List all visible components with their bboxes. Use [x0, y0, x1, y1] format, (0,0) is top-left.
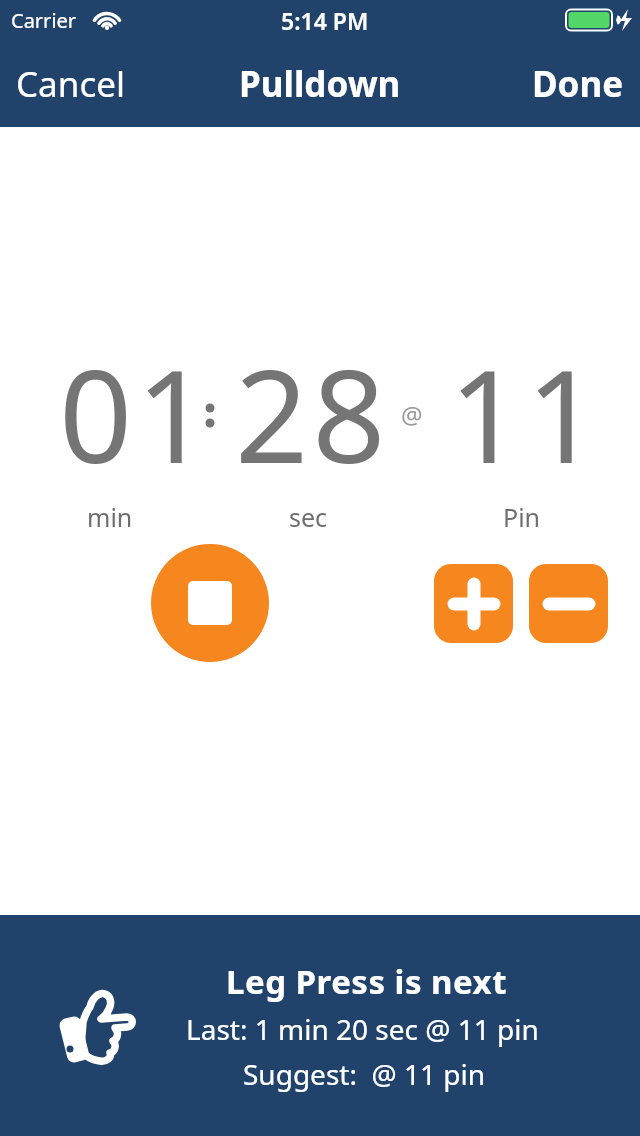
- staticText: Suggest: @ 11 pin: [243, 1055, 486, 1093]
- button[interactable]: [151, 544, 269, 662]
- staticText: 01: [59, 326, 214, 500]
- button[interactable]: [434, 564, 513, 643]
- staticText: min: [87, 500, 133, 534]
- staticText: Carrier: [11, 7, 77, 34]
- staticText: Pin: [503, 500, 541, 534]
- staticText: 5:14 PM: [281, 5, 369, 36]
- button[interactable]: Cancel: [16, 60, 125, 108]
- staticText: 28: [235, 326, 390, 500]
- staticText: Pulldown: [239, 60, 401, 108]
- staticText: 11: [449, 326, 604, 500]
- staticText: Last: 1 min 20 sec @ 11 pin: [186, 1010, 539, 1048]
- button[interactable]: [529, 564, 608, 643]
- staticText: @: [401, 398, 423, 431]
- button[interactable]: Done: [532, 60, 624, 108]
- staticText: Cancel: [16, 60, 125, 108]
- staticText: Leg Press is next: [226, 959, 507, 1004]
- staticText: sec: [289, 500, 328, 534]
- staticText: Done: [532, 60, 624, 108]
